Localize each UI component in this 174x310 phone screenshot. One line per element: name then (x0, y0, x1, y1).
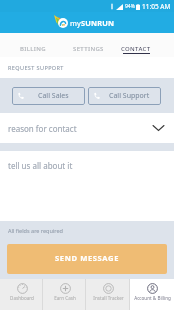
staticText: CONTACT (121, 45, 151, 53)
staticText: Install Tracker (93, 295, 124, 301)
button[interactable]: CONTACT (111, 33, 160, 57)
button[interactable]: Call Support (88, 87, 161, 105)
staticText: BILLING (20, 45, 47, 53)
button[interactable]: SETTINGS (66, 33, 111, 57)
staticText: Earn Cash (54, 295, 76, 301)
staticText: reason for contact (8, 123, 77, 134)
staticText: REQUEST SUPPORT (8, 64, 64, 71)
staticText: my (70, 18, 81, 28)
button[interactable]: Earn Cash (43, 279, 86, 310)
staticText: 11:05 AM (142, 2, 171, 11)
staticText: All fields are required (8, 227, 63, 234)
staticText: Dashboard (10, 295, 34, 301)
staticText: 94% (125, 3, 135, 10)
staticText: Call Sales (38, 91, 69, 101)
button[interactable]: Dashboard (0, 279, 43, 310)
button[interactable]: Account & Billing (130, 279, 174, 310)
staticText: Call Support (109, 91, 150, 101)
button[interactable]: Call Sales (12, 87, 85, 105)
staticText: SEND MESSAGE (55, 253, 119, 263)
staticText: SETTINGS (73, 45, 104, 53)
staticText: SUNRUN (81, 18, 115, 28)
staticText: Account & Billing (134, 295, 171, 301)
other: Expand reason for contact (153, 125, 164, 131)
staticText: tell us all about it (8, 160, 73, 171)
button[interactable]: SEND MESSAGE (7, 244, 167, 274)
button[interactable]: BILLING (0, 33, 66, 57)
button[interactable]: Install Tracker (86, 279, 130, 310)
